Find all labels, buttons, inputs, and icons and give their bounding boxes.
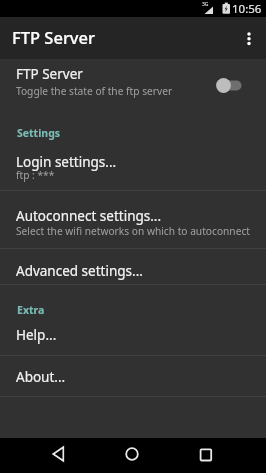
button[interactable]: Advanced settings...	[0, 248, 266, 284]
staticText: Login settings...	[16, 153, 117, 171]
staticText: 3G	[202, 1, 209, 8]
staticText: Select the wifi networks on which to aut…	[16, 224, 250, 238]
button[interactable]: Login settings...	[0, 145, 266, 190]
staticText: About...	[16, 368, 66, 386]
button[interactable]: About...	[0, 356, 266, 396]
staticText: ftp : ***	[16, 168, 55, 182]
staticText: Autoconnect settings...	[16, 207, 162, 225]
staticText: Advanced settings...	[16, 262, 143, 280]
button[interactable]: Help...	[0, 320, 266, 355]
button[interactable]	[42, 438, 76, 473]
staticText: FTP Server	[16, 65, 83, 83]
staticText: Help...	[16, 326, 57, 344]
button[interactable]: Autoconnect settings...	[0, 191, 266, 247]
button[interactable]	[232, 21, 266, 55]
button[interactable]: FTP Server	[0, 59, 266, 111]
staticText: 10:56	[232, 1, 262, 17]
staticText: Extra	[17, 303, 45, 317]
button[interactable]	[115, 438, 149, 473]
button[interactable]	[189, 438, 223, 473]
staticText: Toggle the state of the ftp server	[16, 84, 173, 98]
staticText: Settings	[17, 126, 61, 140]
staticText: FTP Server	[12, 26, 96, 48]
